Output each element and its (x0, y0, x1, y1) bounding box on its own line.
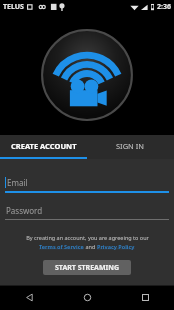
staticText: TELUS (3, 2, 24, 12)
button[interactable]: START STREAMING (43, 260, 131, 275)
staticText: Email (7, 177, 28, 188)
staticText: By creating an account, you are agreeing… (26, 234, 149, 241)
button[interactable]: CREATE ACCOUNT (0, 135, 87, 157)
button[interactable]: Back (0, 285, 58, 310)
button[interactable]: Terms of Service (39, 243, 84, 250)
button[interactable]: Recents (116, 285, 174, 310)
button[interactable]: Home (58, 285, 116, 310)
staticText: CREATE ACCOUNT (11, 141, 77, 151)
button[interactable]: SIGN IN (87, 135, 174, 157)
button[interactable]: Password (5, 204, 169, 220)
staticText: 2:36 (157, 2, 171, 12)
staticText: and (84, 243, 97, 250)
staticText: SIGN IN (116, 141, 145, 151)
button[interactable]: Email (5, 176, 169, 193)
staticText: Privacy Policy (97, 243, 135, 250)
staticText: Password (6, 205, 43, 216)
staticText: START STREAMING (55, 263, 120, 273)
staticText: Terms of Service (39, 243, 84, 250)
button[interactable]: Privacy Policy (97, 243, 135, 250)
